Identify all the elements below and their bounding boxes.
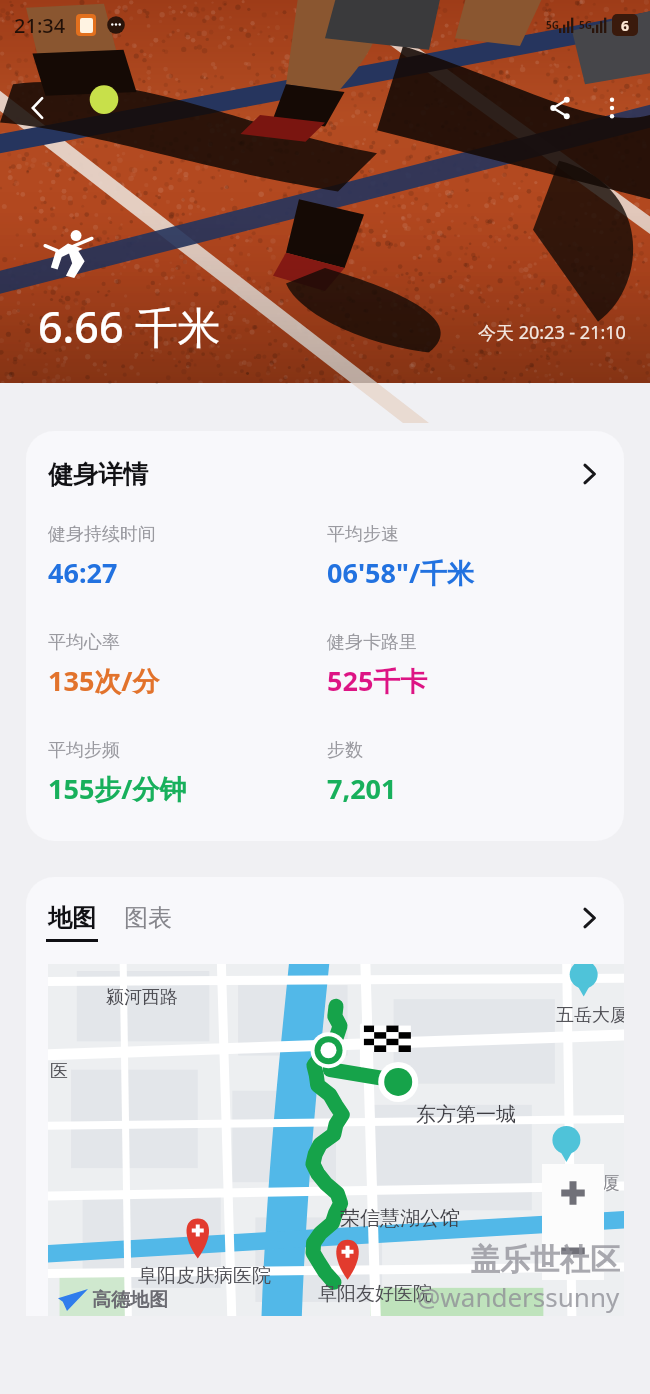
staticText: 6 [621, 16, 630, 35]
staticText: 东方第一城 [416, 1102, 516, 1127]
staticText: 中意大厦 [548, 1172, 620, 1195]
staticText: 7,201 [327, 770, 397, 807]
button[interactable]: More options [586, 82, 638, 134]
staticText: 155步/分钟 [48, 770, 187, 807]
staticText: 医 [50, 1060, 68, 1083]
staticText: 地图 [48, 903, 96, 933]
button[interactable]: 地图 [46, 903, 98, 942]
button[interactable]: 图表 [124, 908, 172, 938]
button[interactable]: Zoom out [542, 1222, 604, 1280]
staticText: 135次/分 [48, 662, 160, 699]
staticText: 6.66 千米 [38, 297, 221, 356]
staticText: 荣信慧湖公馆 [340, 1206, 460, 1231]
staticText: 盖乐世社区 [470, 1241, 620, 1279]
staticText: 平均心率 [48, 631, 120, 654]
staticText: 平均步速 [327, 523, 399, 546]
staticText: 06'58"/千米 [327, 554, 475, 591]
button[interactable]: 颍河西路 [26, 964, 624, 1316]
staticText: 高德地图 [92, 1288, 168, 1312]
button[interactable]: Share [534, 82, 586, 134]
button[interactable]: 健身详情 [26, 431, 624, 841]
staticText: 健身持续时间 [48, 523, 156, 546]
button[interactable]: Zoom in [542, 1164, 604, 1222]
staticText: @wanderssunny [417, 1279, 620, 1314]
staticText: 5G [546, 18, 559, 32]
staticText: 阜阳友好医院 [318, 1282, 432, 1306]
staticText: 46:27 [48, 554, 118, 591]
staticText: 5G [579, 18, 592, 32]
staticText: 五岳大厦 [556, 1004, 624, 1027]
staticText: 健身详情 [48, 459, 148, 490]
staticText: 步数 [327, 739, 363, 762]
staticText: 健身卡路里 [327, 631, 417, 654]
staticText: 21:34 [14, 12, 66, 39]
button[interactable]: Back [12, 82, 64, 134]
staticText: 平均步频 [48, 739, 120, 762]
staticText: 阜阳皮肤病医院 [138, 1264, 271, 1288]
staticText: 今天 20:23 - 21:10 [478, 320, 626, 345]
staticText: 525千卡 [327, 662, 428, 699]
staticText: 颍河西路 [106, 986, 178, 1009]
